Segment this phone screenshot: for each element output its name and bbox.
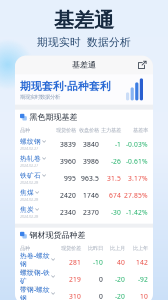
- button[interactable]: Share: [138, 60, 147, 70]
- staticText: 收盘价格: [79, 127, 99, 133]
- staticText: 2340: [60, 208, 76, 217]
- staticText: 黑色期现基差: [29, 112, 77, 122]
- button[interactable]: 螺纹钢: [20, 136, 148, 153]
- staticText: 3839: [60, 140, 76, 149]
- staticText: 0: [99, 292, 103, 300]
- staticText: 40: [117, 258, 125, 267]
- staticText: 现货价差: [61, 245, 81, 251]
- staticText: 比昨日: [88, 245, 103, 251]
- staticText: 2024.02.19: [20, 285, 38, 290]
- staticText: 2024.02.28: [20, 214, 38, 219]
- staticText: -30: [111, 208, 121, 217]
- staticText: 995: [64, 174, 76, 183]
- staticText: 期现实时 数据分析: [37, 36, 131, 49]
- staticText: 比上年: [133, 245, 148, 251]
- staticText: 螺纹钢-铁矿: [20, 268, 50, 285]
- staticText: 3986: [83, 157, 99, 166]
- staticText: 2024.02.19: [20, 268, 38, 273]
- staticText: 品种: [20, 245, 30, 251]
- staticText: 2024.02.28: [20, 197, 38, 202]
- button[interactable]: 焦煤: [20, 187, 148, 204]
- staticText: 基差通: [54, 8, 114, 33]
- staticText: 焦炭: [20, 205, 34, 214]
- staticText: 0: [99, 275, 103, 284]
- staticText: 27.85%: [124, 191, 148, 200]
- staticText: 2420: [60, 191, 76, 200]
- staticText: 主力基差: [101, 127, 121, 133]
- staticText: 钢材现货品种差: [29, 230, 85, 240]
- staticText: 963.5: [81, 174, 99, 183]
- staticText: 1746: [83, 191, 99, 200]
- staticText: 带钢-螺纹钢: [20, 285, 50, 300]
- staticText: 310: [69, 292, 81, 300]
- staticText: -26: [111, 157, 121, 166]
- staticText: 基差率: [133, 127, 148, 133]
- staticText: 热卷-螺纹钢: [20, 251, 50, 268]
- staticText: 31.5: [107, 174, 121, 183]
- staticText: 142: [136, 258, 148, 267]
- button[interactable]: 带钢-螺纹钢: [20, 288, 148, 300]
- staticText: 3840: [83, 140, 99, 149]
- staticText: 674: [109, 191, 121, 200]
- staticText: -1.42%: [126, 208, 148, 217]
- staticText: 期现套利·品种套利: [20, 79, 111, 93]
- staticText: -20: [115, 292, 125, 300]
- staticText: 螺纹钢: [20, 137, 41, 146]
- button[interactable]: 铁矿石: [20, 170, 148, 187]
- staticText: 3960: [60, 157, 76, 166]
- staticText: -1: [115, 140, 121, 149]
- staticText: 期现实时数据分析: [20, 94, 60, 100]
- button[interactable]: 热轧卷: [20, 153, 148, 170]
- staticText: 2370: [83, 208, 99, 217]
- staticText: -0.61%: [126, 157, 148, 166]
- staticText: 281: [69, 258, 81, 267]
- staticText: -0.03%: [126, 140, 148, 149]
- staticText: 2024.02.28: [20, 180, 38, 185]
- staticText: 铁矿石: [20, 171, 41, 180]
- staticText: -20: [115, 275, 125, 284]
- button[interactable]: 热卷-螺纹钢: [20, 254, 148, 271]
- staticText: 219: [69, 275, 81, 284]
- staticText: -10: [93, 258, 103, 267]
- staticText: 现货价格: [56, 127, 76, 133]
- staticText: 3.17%: [128, 174, 148, 183]
- staticText: 2024.02.27: [20, 146, 38, 151]
- button[interactable]: 螺纹钢-铁矿: [20, 271, 148, 288]
- staticText: 热轧卷: [20, 154, 41, 163]
- staticText: 10: [140, 292, 148, 300]
- staticText: 品种: [20, 127, 30, 133]
- staticText: 基差通: [72, 60, 96, 70]
- staticText: 2024.02.27: [20, 163, 38, 168]
- button[interactable]: 焦炭: [20, 204, 148, 221]
- staticText: 比上月: [110, 245, 125, 251]
- staticText: -92: [138, 275, 148, 284]
- staticText: 焦煤: [20, 188, 34, 197]
